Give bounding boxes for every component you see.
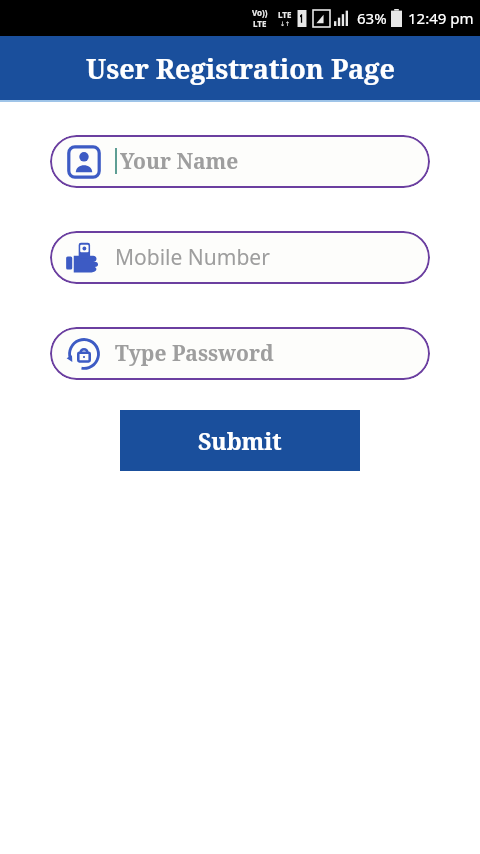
staticText: 63% bbox=[357, 8, 387, 28]
staticText: LTE bbox=[278, 9, 292, 20]
staticText: LTE bbox=[253, 18, 267, 29]
button[interactable]: Name bbox=[50, 135, 430, 188]
button[interactable]: Submit bbox=[120, 410, 360, 471]
staticText: Type Password bbox=[115, 339, 274, 368]
staticText: Your Name bbox=[120, 147, 239, 176]
button[interactable]: Password bbox=[50, 327, 430, 380]
staticText: ↓↑ bbox=[280, 20, 291, 27]
staticText: 12:49 pm bbox=[408, 8, 474, 28]
staticText: Submit bbox=[198, 425, 282, 456]
button[interactable]: Mobile number bbox=[50, 231, 430, 284]
staticText: Vo)) bbox=[252, 7, 268, 18]
staticText: User Registration Page bbox=[86, 50, 395, 87]
staticText: Mobile Number bbox=[115, 243, 270, 272]
